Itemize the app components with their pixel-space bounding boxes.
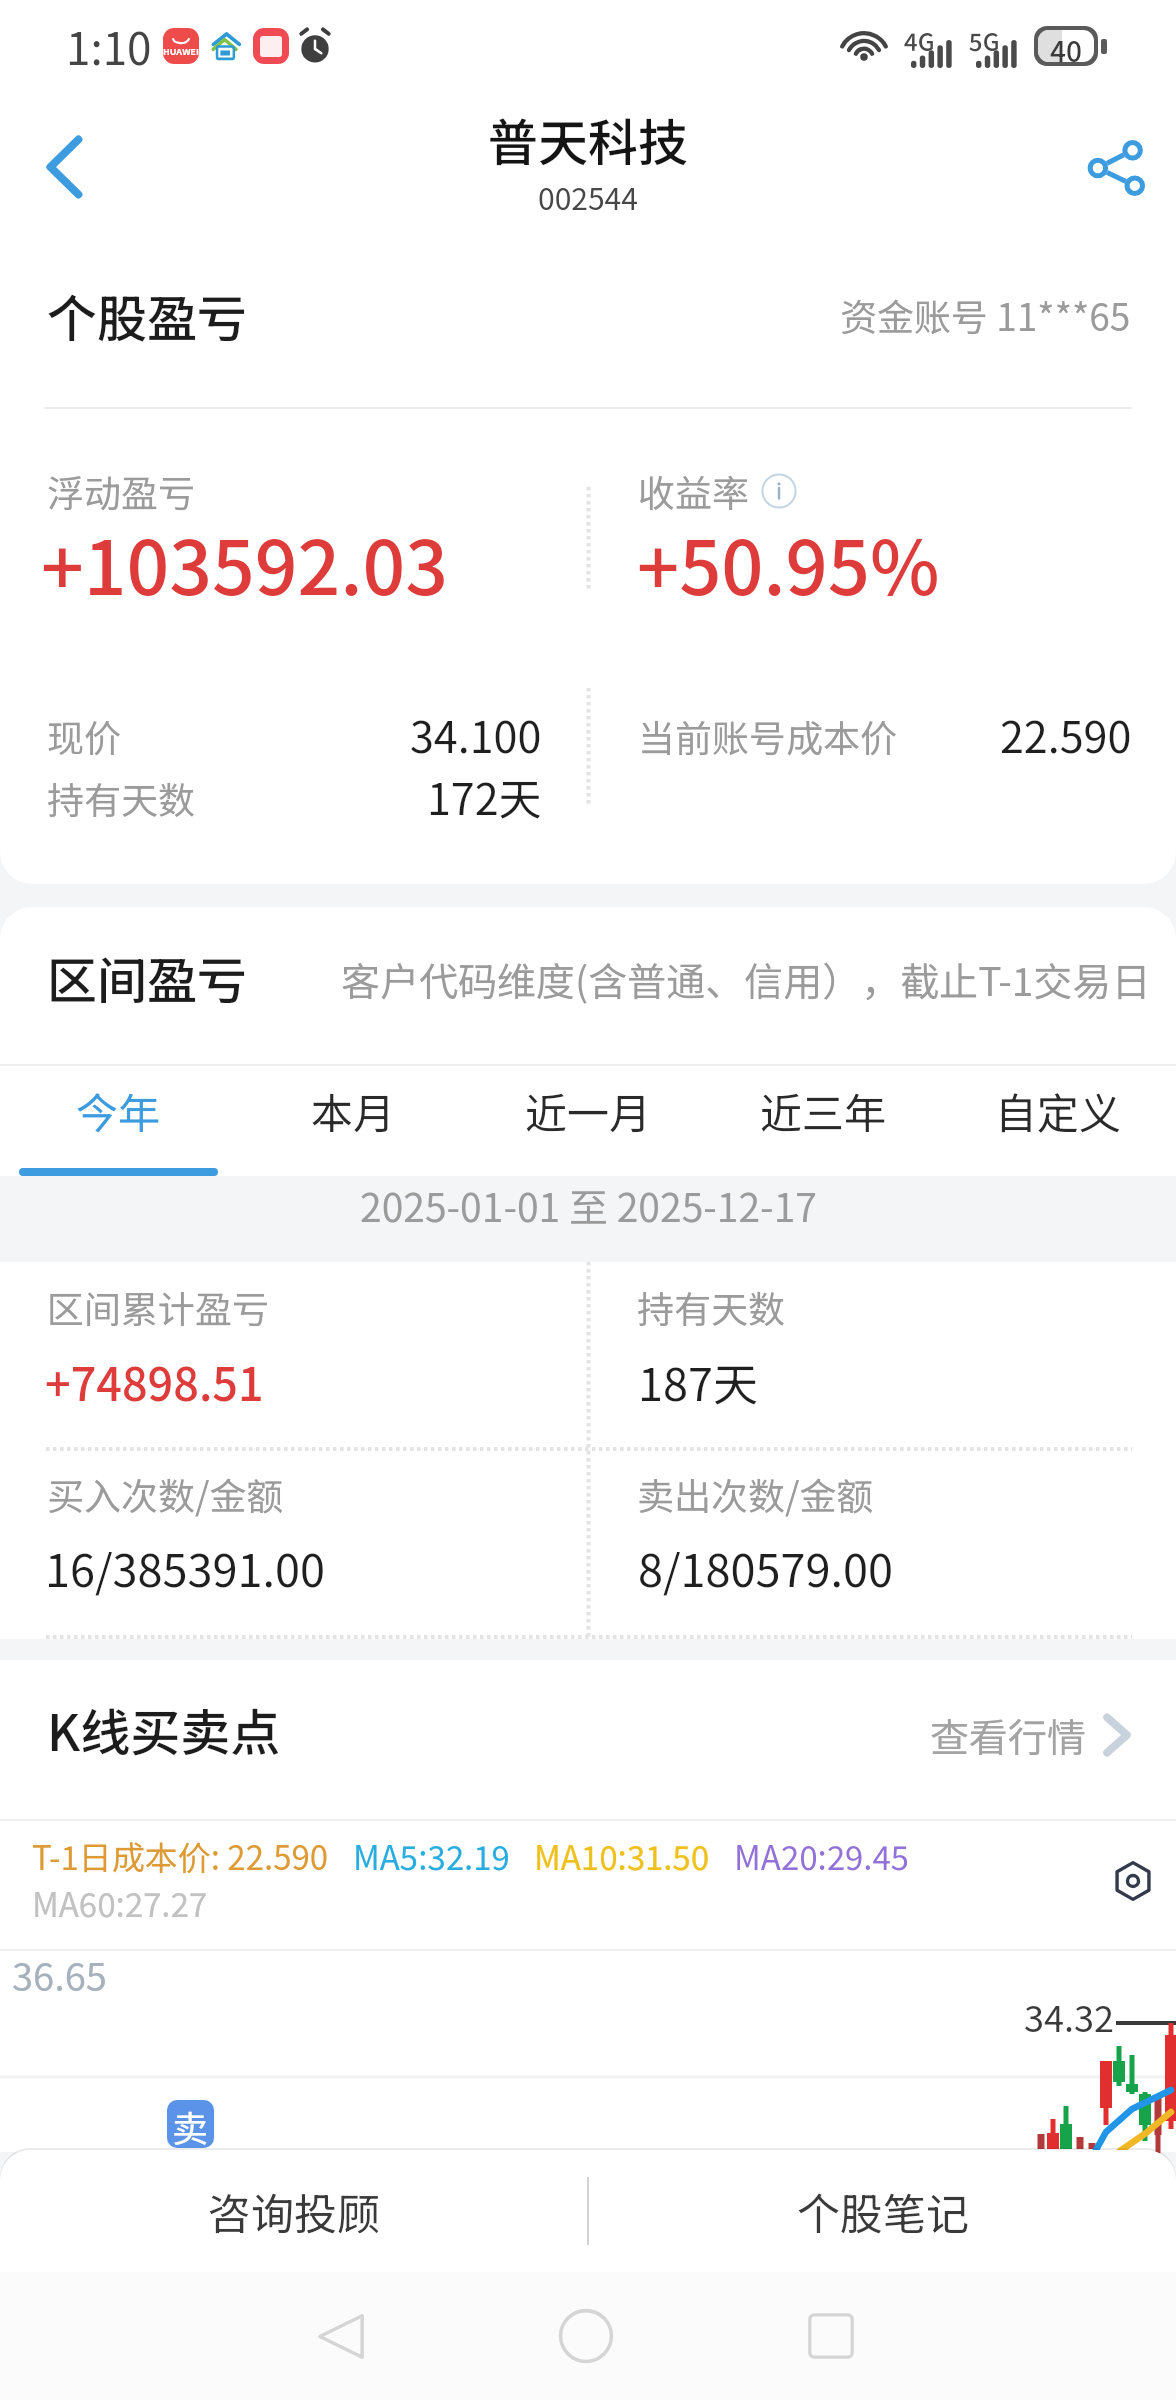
staticText: 16/385391.00 [45, 1535, 325, 1600]
button[interactable]: Recents [786, 2291, 876, 2381]
button[interactable]: 查看行情 [930, 1707, 1130, 1763]
staticText: 浮动盈亏 [47, 464, 195, 518]
button[interactable]: Back [18, 121, 110, 213]
staticText: 34.32 [1024, 1990, 1114, 2042]
staticText: MA20:29.45 [734, 1832, 910, 1880]
staticText: 8/180579.00 [638, 1535, 893, 1600]
staticText: MA10:31.50 [534, 1832, 710, 1880]
staticText: MA5:32.19 [353, 1832, 510, 1880]
staticText: 22.590 [1000, 703, 1132, 765]
staticText: 自定义 [995, 1080, 1122, 1141]
button[interactable]: Home [541, 2291, 631, 2381]
button[interactable]: 自定义 [941, 1066, 1176, 1176]
staticText: 今年 [76, 1080, 161, 1141]
staticText: 买入次数/金额 [47, 1467, 284, 1521]
staticText: 区间累计盈亏 [47, 1280, 269, 1334]
staticText: HUAWEI [163, 45, 199, 58]
button[interactable]: 近一月 [471, 1066, 706, 1176]
button[interactable]: 近三年 [706, 1066, 941, 1176]
staticText: +74898.51 [45, 1349, 264, 1414]
staticText: 持有天数 [637, 1280, 785, 1334]
staticText: 本月 [311, 1080, 396, 1141]
staticText: 现价 [47, 709, 121, 763]
staticText: 个股笔记 [797, 2180, 969, 2242]
staticText: 资金账号 11***65 [840, 288, 1131, 342]
button[interactable]: 本月 [236, 1066, 471, 1176]
staticText: 咨询投顾 [208, 2180, 380, 2242]
staticText: 查看行情 [930, 1707, 1087, 1763]
button[interactable]: Chart settings [1106, 1854, 1160, 1908]
staticText: 34.100 [410, 703, 542, 765]
staticText: 40 [1050, 30, 1082, 62]
staticText: K线买卖点 [47, 1693, 281, 1765]
staticText: 5G [969, 23, 1000, 58]
staticText: MA60:27.27 [32, 1879, 208, 1927]
staticText: 2025-01-01 至 2025-12-17 [360, 1177, 817, 1233]
button[interactable]: 个股笔记 [589, 2150, 1176, 2272]
staticText: 172天 [427, 765, 542, 827]
staticText: 卖 [172, 2100, 209, 2148]
staticText: 近三年 [760, 1080, 887, 1141]
staticText: 36.65 [12, 1947, 107, 2002]
staticText: 个股盈亏 [47, 279, 247, 351]
staticText: 当前账号成本价 [638, 709, 897, 763]
staticText: 普天科技 [488, 103, 688, 175]
staticText: 收益率 [638, 464, 749, 518]
staticText: 客户代码维度(含普通、信用），截止T-1交易日 [341, 951, 1151, 1007]
staticText: +103592.03 [41, 508, 449, 617]
staticText: 1:10 [66, 14, 152, 78]
staticText: 卖出次数/金额 [637, 1467, 874, 1521]
staticText: 187天 [638, 1349, 758, 1414]
staticText: 持有天数 [47, 771, 195, 825]
button[interactable]: 今年 [0, 1066, 236, 1176]
button[interactable]: Back [296, 2291, 386, 2381]
staticText: 近一月 [525, 1080, 652, 1141]
staticText: 区间盈亏 [47, 941, 247, 1013]
staticText: 002544 [538, 175, 638, 218]
staticText: 4G [904, 23, 935, 58]
staticText: +50.95% [637, 509, 940, 616]
button[interactable]: 咨询投顾 [0, 2150, 587, 2272]
staticText: T-1日成本价: 22.590 [32, 1832, 329, 1880]
button[interactable]: Share [1068, 122, 1160, 214]
